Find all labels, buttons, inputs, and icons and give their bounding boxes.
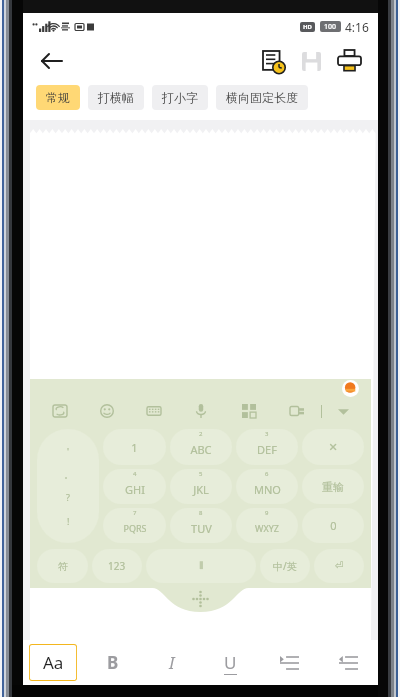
button[interactable]: Collapse keyboard bbox=[322, 398, 365, 424]
staticText: 中/英 bbox=[273, 559, 297, 573]
staticText: 9 bbox=[265, 509, 269, 517]
staticText: 0 bbox=[330, 518, 337, 533]
button[interactable]: ⦀ bbox=[146, 549, 256, 583]
staticText: 100 bbox=[324, 22, 337, 32]
staticText: HD bbox=[303, 23, 312, 31]
button[interactable]: B bbox=[83, 640, 142, 685]
button[interactable]: TUV bbox=[170, 508, 232, 543]
button[interactable]: Keyboard tool 6 bbox=[273, 398, 321, 424]
button[interactable]: ✕ bbox=[302, 429, 364, 465]
staticText: ' bbox=[67, 445, 70, 457]
staticText: U bbox=[224, 651, 237, 674]
button[interactable]: Punctuation column bbox=[37, 429, 99, 543]
staticText: 符 bbox=[58, 560, 68, 573]
staticText: ! bbox=[67, 515, 70, 527]
button[interactable]: Save bbox=[292, 42, 330, 80]
button[interactable]: Print bbox=[330, 42, 368, 80]
staticText: 4 bbox=[133, 470, 137, 478]
staticText: ⦀ bbox=[199, 561, 204, 571]
button[interactable]: Keyboard tool 2 bbox=[83, 398, 130, 424]
staticText: ABC bbox=[190, 442, 212, 457]
button[interactable]: U bbox=[201, 640, 260, 685]
staticText: 横向固定长度 bbox=[226, 90, 298, 105]
button[interactable]: 横向固定长度 bbox=[216, 85, 308, 110]
button[interactable]: Keyboard tool 4 bbox=[177, 398, 225, 424]
button[interactable]: JKL bbox=[170, 469, 232, 504]
staticText: 重输 bbox=[322, 480, 344, 494]
staticText: GHI bbox=[125, 482, 145, 497]
button[interactable]: Increase indent bbox=[260, 640, 319, 685]
button[interactable]: 中/英 bbox=[260, 549, 310, 583]
button[interactable]: Keyboard tool 1 bbox=[36, 398, 83, 424]
button[interactable]: GHI bbox=[103, 469, 166, 504]
button[interactable]: Aa bbox=[29, 644, 77, 681]
staticText: MNO bbox=[254, 482, 281, 497]
button[interactable]: 打小字 bbox=[152, 85, 208, 110]
button[interactable]: DEF bbox=[236, 429, 298, 465]
button[interactable]: 1 bbox=[103, 429, 166, 465]
staticText: 3 bbox=[265, 430, 269, 438]
button[interactable]: Back bbox=[33, 43, 69, 79]
staticText: 1 bbox=[131, 440, 138, 455]
staticText: I bbox=[169, 651, 175, 674]
staticText: WXYZ bbox=[255, 522, 279, 534]
button[interactable]: WXYZ bbox=[236, 508, 298, 543]
button[interactable]: History bbox=[254, 42, 292, 80]
button[interactable]: PQRS bbox=[103, 508, 166, 543]
staticText: PQRS bbox=[123, 522, 147, 534]
staticText: 5 bbox=[199, 470, 203, 478]
staticText: TUV bbox=[191, 521, 212, 536]
button[interactable]: 123 bbox=[92, 549, 142, 583]
staticText: B bbox=[107, 651, 119, 674]
staticText: 7 bbox=[133, 509, 137, 517]
button[interactable]: 0 bbox=[302, 508, 364, 543]
button[interactable]: ABC bbox=[170, 429, 232, 465]
button[interactable]: MNO bbox=[236, 469, 298, 504]
button[interactable]: Keyboard tool 5 bbox=[225, 398, 273, 424]
staticText: 4:16 bbox=[345, 19, 369, 35]
staticText: ✕ bbox=[328, 441, 338, 454]
staticText: ⏎ bbox=[335, 560, 344, 572]
button[interactable]: 常规 bbox=[36, 85, 80, 110]
staticText: 123 bbox=[108, 559, 126, 573]
button[interactable]: 符 bbox=[37, 549, 88, 583]
button[interactable]: 重输 bbox=[302, 469, 364, 504]
staticText: ? bbox=[66, 491, 70, 503]
button[interactable]: Decrease indent bbox=[319, 640, 378, 685]
staticText: 2 bbox=[199, 430, 203, 438]
staticText: 常规 bbox=[46, 90, 70, 105]
staticText: 6 bbox=[265, 470, 269, 478]
staticText: 8 bbox=[199, 509, 203, 517]
button[interactable]: 打横幅 bbox=[88, 85, 144, 110]
staticText: 打小字 bbox=[162, 90, 198, 105]
staticText: Aa bbox=[43, 651, 64, 674]
button[interactable]: Keyboard tool 3 bbox=[130, 398, 177, 424]
staticText: 。 bbox=[64, 469, 73, 480]
staticText: 打横幅 bbox=[98, 90, 134, 105]
button[interactable]: I bbox=[142, 640, 201, 685]
staticText: DEF bbox=[257, 442, 277, 457]
button[interactable]: ⏎ bbox=[314, 549, 364, 583]
staticText: JKL bbox=[193, 482, 209, 497]
